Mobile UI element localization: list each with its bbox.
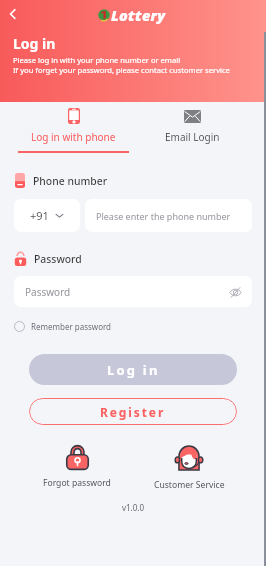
staticText: v1.0.0 [0, 502, 266, 513]
staticText: Log in [107, 361, 160, 379]
staticText: Log in with phone [31, 130, 116, 144]
staticText: Lottery [111, 5, 166, 25]
button[interactable]: Register [29, 398, 237, 425]
button[interactable]: Forgot password [21, 444, 133, 489]
staticText: Phone number [33, 174, 108, 188]
staticText: Remember password [31, 321, 112, 332]
staticText: Email Login [165, 130, 220, 144]
staticText: Customer Service [154, 479, 225, 491]
staticText: Log in [13, 34, 56, 53]
staticText: +91 [30, 208, 49, 223]
button[interactable]: Remember password [14, 320, 112, 333]
staticText: Password [34, 252, 82, 266]
button[interactable]: Email Login [133, 102, 252, 154]
staticText: Please log in with your phone number or … [13, 55, 181, 65]
staticText: Forgot password [43, 477, 111, 489]
button[interactable]: Please enter the phone number [85, 199, 252, 232]
staticText: Please enter the phone number [96, 210, 231, 222]
button[interactable]: Show password [227, 284, 243, 300]
button[interactable]: Log in [29, 354, 237, 385]
staticText: Password [25, 285, 71, 299]
button[interactable]: Customer Service [133, 444, 245, 491]
staticText: Register [100, 404, 166, 420]
staticText: If you forget your password, please cont… [13, 65, 230, 75]
button[interactable]: Log in with phone [14, 102, 133, 154]
button[interactable]: Password [14, 276, 252, 307]
button[interactable]: +91 [14, 199, 80, 232]
button[interactable]: Back [2, 3, 24, 25]
